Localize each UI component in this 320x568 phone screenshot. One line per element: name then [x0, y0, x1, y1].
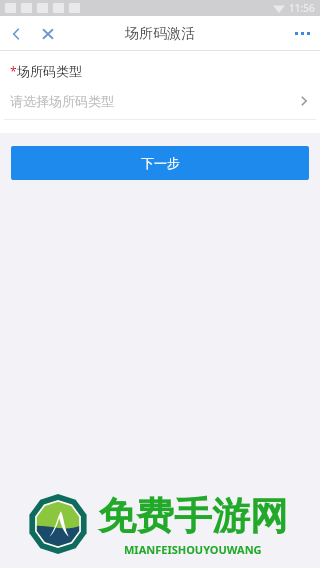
button[interactable]: 请选择场所码类型	[0, 88, 320, 114]
staticText: 下一步	[141, 155, 180, 171]
staticText: MIANFEISHOUYOUWANG	[124, 542, 262, 557]
button[interactable]: Back	[0, 18, 32, 50]
staticText: 免费手游网	[98, 492, 288, 540]
staticText: 场所码类型	[17, 63, 82, 79]
button[interactable]: Close	[32, 18, 64, 50]
staticText: 11:56	[289, 1, 315, 15]
button[interactable]: More options	[284, 16, 320, 51]
staticText: 场所码激活	[125, 25, 195, 43]
staticText: 请选择场所码类型	[10, 93, 298, 109]
button[interactable]: 下一步	[11, 146, 309, 180]
staticText: *	[10, 63, 17, 79]
